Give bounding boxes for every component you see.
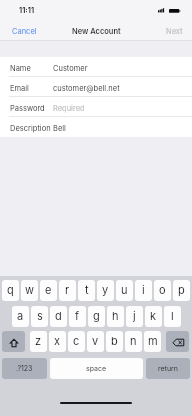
staticText: w: [25, 283, 35, 296]
staticText: g: [93, 309, 100, 322]
button[interactable]: p: [173, 280, 190, 301]
button[interactable]: u: [116, 280, 133, 301]
button[interactable]: q: [2, 280, 19, 301]
staticText: Required: [53, 104, 85, 113]
button[interactable]: c: [68, 331, 85, 352]
staticText: n: [130, 334, 137, 347]
button[interactable]: x: [49, 331, 66, 352]
staticText: q: [7, 283, 14, 296]
staticText: Customer: [53, 64, 88, 73]
staticText: Description: [10, 124, 51, 133]
button[interactable]: e: [40, 280, 57, 301]
staticText: v: [92, 334, 99, 347]
staticText: .?123: [16, 364, 33, 372]
button[interactable]: Shift: [2, 331, 25, 352]
staticText: Bell: [53, 124, 66, 133]
staticText: b: [111, 334, 118, 347]
staticText: c: [73, 334, 80, 347]
button[interactable]: g: [88, 306, 105, 327]
staticText: return: [158, 364, 178, 372]
staticText: o: [159, 283, 166, 296]
staticText: r: [65, 283, 70, 296]
button[interactable]: z: [30, 331, 47, 352]
button[interactable]: Email: [0, 77, 192, 97]
staticText: f: [75, 309, 80, 322]
staticText: y: [102, 283, 109, 296]
button[interactable]: j: [126, 306, 143, 327]
button[interactable]: v: [87, 331, 104, 352]
staticText: j: [133, 309, 136, 322]
button[interactable]: f: [69, 306, 86, 327]
staticText: x: [54, 334, 61, 347]
staticText: Password: [10, 104, 45, 113]
button[interactable]: w: [21, 280, 38, 301]
button[interactable]: return: [146, 358, 190, 379]
button[interactable]: Password: [0, 97, 192, 117]
button[interactable]: space: [50, 358, 143, 379]
button[interactable]: a: [12, 306, 29, 327]
staticText: e: [45, 283, 52, 296]
button[interactable]: s: [31, 306, 48, 327]
staticText: p: [178, 283, 185, 296]
button[interactable]: o: [154, 280, 171, 301]
staticText: z: [35, 334, 42, 347]
button[interactable]: b: [106, 331, 123, 352]
button[interactable]: Next: [159, 25, 190, 38]
button[interactable]: y: [97, 280, 114, 301]
staticText: customer@bell.net: [53, 84, 120, 93]
staticText: Name: [10, 64, 31, 73]
button[interactable]: .?123: [2, 358, 47, 379]
button[interactable]: m: [144, 331, 161, 352]
staticText: m: [148, 334, 158, 347]
button[interactable]: i: [135, 280, 152, 301]
button[interactable]: d: [50, 306, 67, 327]
button[interactable]: r: [59, 280, 76, 301]
button[interactable]: h: [107, 306, 124, 327]
staticText: a: [17, 309, 24, 322]
staticText: Email: [10, 84, 29, 93]
staticText: d: [55, 309, 62, 322]
staticText: Cancel: [12, 27, 37, 36]
button[interactable]: Description: [0, 117, 192, 137]
staticText: t: [85, 283, 89, 296]
staticText: New Account: [72, 27, 121, 36]
staticText: Next: [166, 27, 183, 36]
button[interactable]: Cancel: [5, 25, 44, 38]
staticText: 11:11: [19, 6, 35, 15]
button[interactable]: Name: [0, 57, 192, 77]
staticText: h: [112, 309, 119, 322]
button[interactable]: k: [145, 306, 162, 327]
button[interactable]: Backspace: [166, 331, 189, 352]
staticText: k: [150, 309, 157, 322]
staticText: i: [142, 283, 145, 296]
staticText: s: [37, 309, 43, 322]
button[interactable]: n: [125, 331, 142, 352]
staticText: l: [171, 309, 174, 322]
staticText: u: [121, 283, 128, 296]
staticText: space: [86, 364, 107, 372]
button[interactable]: t: [78, 280, 95, 301]
button[interactable]: l: [164, 306, 181, 327]
